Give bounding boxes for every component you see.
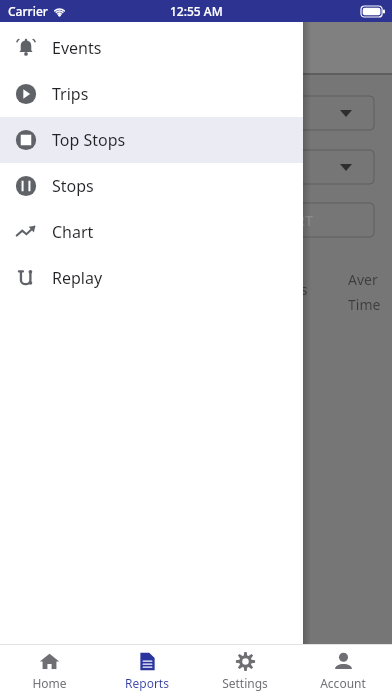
button[interactable]: Account: [294, 651, 392, 691]
button[interactable]: Home: [0, 651, 98, 691]
staticText: Carrier: [8, 3, 48, 19]
staticText: dress: [272, 280, 308, 299]
staticText: Replay: [52, 267, 103, 289]
staticText: Reports: [125, 675, 169, 691]
staticText: Settings: [222, 675, 268, 691]
staticText: s, A…: [256, 158, 291, 177]
button[interactable]: Chart: [0, 209, 303, 255]
staticText: 12:55 AM: [170, 3, 223, 19]
button[interactable]: s, A…: [250, 150, 374, 184]
staticText: Chart: [52, 221, 94, 243]
button[interactable]: REPORT: [250, 203, 374, 237]
button[interactable]: Stops: [0, 163, 303, 209]
button[interactable]: [250, 96, 374, 130]
staticText: REPORT: [260, 211, 313, 230]
staticText: Account: [320, 675, 366, 691]
staticText: Trips: [52, 83, 89, 105]
staticText: Top Stops: [52, 129, 126, 151]
staticText: Events: [52, 37, 102, 59]
staticText: Home: [32, 675, 67, 691]
button[interactable]: Settings: [196, 651, 294, 691]
button[interactable]: Replay: [0, 255, 303, 301]
staticText: Stops: [52, 175, 94, 197]
button[interactable]: Trips: [0, 71, 303, 117]
button[interactable]: Top Stops: [0, 117, 303, 163]
staticText: Time: [348, 295, 381, 314]
button[interactable]: Reports: [98, 651, 196, 691]
staticText: Aver: [348, 270, 378, 289]
button[interactable]: Events: [0, 25, 303, 71]
